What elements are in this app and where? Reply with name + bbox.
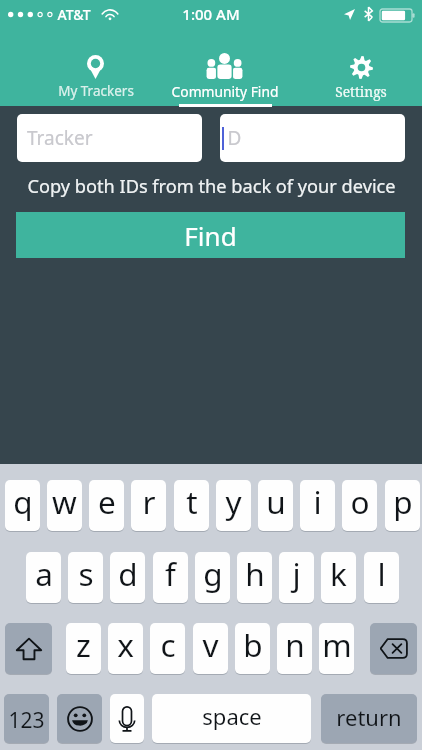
staticText: j: [292, 552, 301, 595]
button[interactable]: o: [342, 480, 377, 531]
button[interactable]: x: [108, 623, 143, 674]
button[interactable]: c: [150, 623, 185, 674]
button[interactable]: Tracker: [17, 114, 202, 162]
button[interactable]: n: [277, 623, 312, 674]
button[interactable]: d: [110, 552, 145, 603]
staticText: w: [52, 480, 77, 523]
button[interactable]: return: [321, 694, 417, 743]
button[interactable]: q: [5, 480, 40, 531]
staticText: q: [13, 480, 33, 523]
button[interactable]: 123: [4, 694, 49, 743]
button[interactable]: f: [153, 552, 188, 603]
staticText: k: [330, 552, 347, 595]
staticText: o: [350, 480, 370, 523]
button[interactable]: i: [300, 480, 335, 531]
button[interactable]: j: [279, 552, 314, 603]
button[interactable]: l: [364, 552, 399, 603]
staticText: h: [245, 552, 265, 595]
staticText: My Trackers: [36, 82, 156, 100]
staticText: i: [313, 480, 322, 523]
staticText: e: [98, 480, 116, 523]
staticText: 123: [8, 706, 45, 735]
staticText: AT&T: [57, 5, 91, 24]
staticText: u: [266, 480, 286, 523]
button[interactable]: r: [131, 480, 166, 531]
button[interactable]: Backspace: [370, 623, 417, 674]
staticText: 1:00 AM: [182, 4, 240, 24]
button[interactable]: s: [68, 552, 103, 603]
button[interactable]: Find: [16, 212, 405, 258]
button[interactable]: y: [216, 480, 251, 531]
staticText: Community Find: [165, 82, 285, 101]
button[interactable]: z: [66, 623, 101, 674]
button[interactable]: h: [237, 552, 272, 603]
button[interactable]: Settings: [301, 42, 421, 106]
button[interactable]: Community Find: [165, 42, 285, 106]
staticText: a: [35, 552, 53, 595]
staticText: space: [202, 701, 262, 731]
staticText: ID: [221, 125, 242, 151]
button[interactable]: b: [235, 623, 270, 674]
button[interactable]: g: [195, 552, 230, 603]
staticText: b: [243, 623, 263, 666]
button[interactable]: w: [47, 480, 82, 531]
button[interactable]: p: [385, 480, 420, 531]
staticText: g: [203, 552, 223, 595]
button[interactable]: m: [319, 623, 354, 674]
staticText: Tracker: [27, 125, 93, 151]
staticText: y: [225, 480, 242, 523]
button[interactable]: Shift: [5, 623, 52, 674]
button[interactable]: My Trackers: [36, 42, 156, 106]
staticText: Copy both IDs from the back of your devi…: [27, 174, 396, 199]
staticText: n: [285, 623, 305, 666]
button[interactable]: Emoji: [57, 694, 102, 743]
staticText: p: [393, 480, 413, 523]
button[interactable]: Dictation: [110, 694, 144, 743]
staticText: r: [142, 480, 156, 523]
staticText: m: [322, 623, 352, 666]
staticText: v: [202, 623, 219, 666]
button[interactable]: space: [152, 694, 311, 743]
staticText: Find: [184, 218, 237, 253]
staticText: x: [117, 623, 134, 666]
button[interactable]: a: [26, 552, 61, 603]
staticText: return: [336, 702, 402, 732]
staticText: t: [186, 480, 198, 523]
staticText: Settings: [301, 82, 421, 101]
button[interactable]: u: [258, 480, 293, 531]
staticText: z: [76, 623, 91, 666]
staticText: d: [118, 552, 138, 595]
staticText: s: [78, 552, 94, 595]
staticText: f: [165, 552, 176, 595]
button[interactable]: t: [174, 480, 209, 531]
button[interactable]: e: [89, 480, 124, 531]
button[interactable]: k: [321, 552, 356, 603]
staticText: l: [377, 552, 386, 595]
button[interactable]: ID: [220, 114, 405, 162]
staticText: c: [160, 623, 176, 666]
button[interactable]: v: [193, 623, 228, 674]
